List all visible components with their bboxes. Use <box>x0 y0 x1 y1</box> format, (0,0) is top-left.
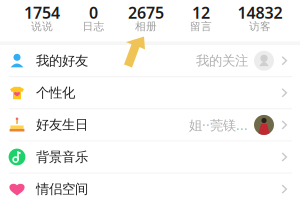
staticText: 2675 <box>128 2 164 23</box>
button[interactable]: 2675 <box>118 4 174 32</box>
staticText: 姐··莞镁... <box>189 116 248 134</box>
staticText: 我的关注 <box>196 52 248 69</box>
staticText: 个性化 <box>36 85 75 101</box>
staticText: 相册 <box>135 20 157 33</box>
staticText: 0 <box>89 2 98 23</box>
staticText: 留言 <box>190 20 212 33</box>
staticText: 我的好友 <box>36 52 88 69</box>
staticText: 说说 <box>31 20 53 33</box>
staticText: 14832 <box>237 2 282 23</box>
button[interactable]: 14832 <box>228 4 292 32</box>
button[interactable]: 个性化 <box>0 77 300 109</box>
button[interactable]: 好友生日 <box>0 109 300 141</box>
staticText: 日志 <box>82 20 104 33</box>
button[interactable]: 0 <box>69 4 118 32</box>
button[interactable]: 情侣空间 <box>0 173 300 200</box>
button[interactable]: 背景音乐 <box>0 141 300 173</box>
staticText: 背景音乐 <box>36 149 88 165</box>
staticText: 12 <box>192 2 210 23</box>
staticText: 1754 <box>24 2 60 23</box>
button[interactable]: 我的好友 <box>0 45 300 77</box>
button[interactable]: 1754 <box>15 4 69 32</box>
staticText: 访客 <box>249 20 271 33</box>
staticText: 好友生日 <box>36 117 88 133</box>
staticText: 情侣空间 <box>36 181 88 197</box>
button[interactable]: 12 <box>174 4 228 32</box>
